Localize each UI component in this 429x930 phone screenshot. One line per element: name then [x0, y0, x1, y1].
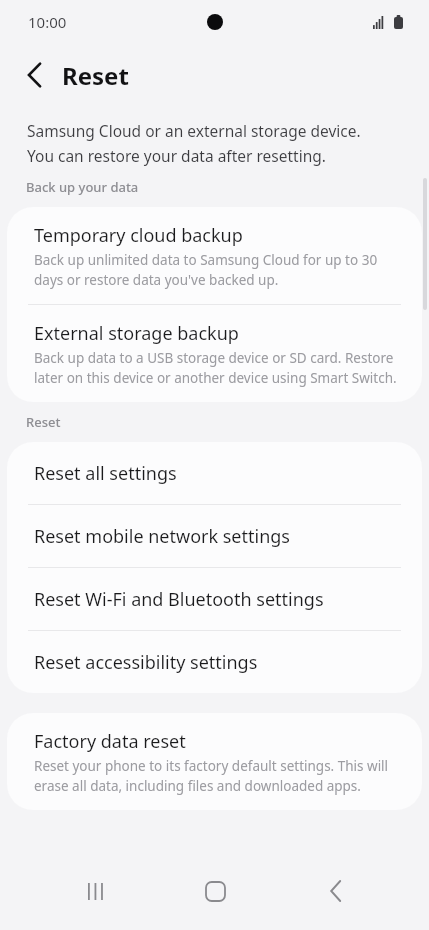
button[interactable]: Back	[12, 52, 58, 98]
staticText: Reset	[62, 59, 129, 92]
button[interactable]: Home	[187, 863, 243, 919]
staticText: Back up data to a USB storage device or …	[34, 349, 400, 387]
staticText: Reset mobile network settings	[34, 524, 290, 549]
staticText: Reset accessibility settings	[34, 650, 258, 675]
staticText: Samsung Cloud or an external storage dev…	[27, 120, 391, 167]
staticText: Back up your data	[26, 178, 139, 196]
button[interactable]: Reset mobile network settings	[7, 505, 422, 568]
staticText: 10:00	[28, 12, 67, 32]
staticText: Back up unlimited data to Samsung Cloud …	[34, 251, 400, 289]
button[interactable]: Back	[308, 863, 364, 919]
button[interactable]: External storage backup	[7, 305, 422, 402]
button[interactable]: Factory data reset	[7, 713, 422, 810]
staticText: Reset your phone to its factory default …	[34, 757, 400, 795]
staticText: Temporary cloud backup	[34, 223, 243, 248]
button[interactable]: Reset accessibility settings	[7, 631, 422, 693]
staticText: External storage backup	[34, 321, 239, 346]
staticText: Reset Wi-Fi and Bluetooth settings	[34, 587, 324, 612]
staticText: Reset all settings	[34, 461, 177, 486]
button[interactable]: Reset all settings	[7, 442, 422, 505]
button[interactable]: Reset Wi-Fi and Bluetooth settings	[7, 568, 422, 631]
staticText: Reset	[26, 413, 61, 431]
staticText: Factory data reset	[34, 729, 186, 754]
button[interactable]: Temporary cloud backup	[7, 207, 422, 305]
button[interactable]: Recent apps	[68, 863, 124, 919]
